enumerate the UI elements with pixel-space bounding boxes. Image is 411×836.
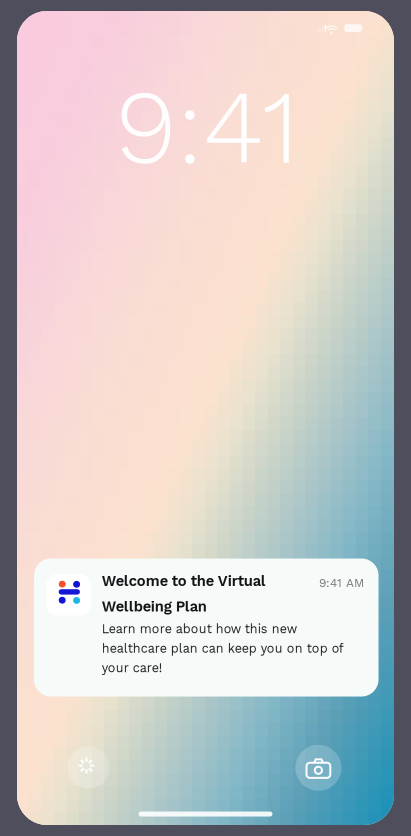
button[interactable]: Camera <box>295 745 341 791</box>
button[interactable]: Flashlight <box>65 745 111 791</box>
button[interactable]: Welcome to the Virtual <box>34 558 378 696</box>
staticText: 9:41 <box>115 66 299 188</box>
staticText: Learn more about how this new <box>102 622 297 636</box>
staticText: 9:41 AM <box>319 576 364 590</box>
staticText: your care! <box>102 661 162 675</box>
staticText: Welcome to the Virtual <box>102 572 266 590</box>
staticText: Wellbeing Plan <box>102 598 207 615</box>
staticText: healthcare plan can keep you on top of <box>102 641 344 656</box>
